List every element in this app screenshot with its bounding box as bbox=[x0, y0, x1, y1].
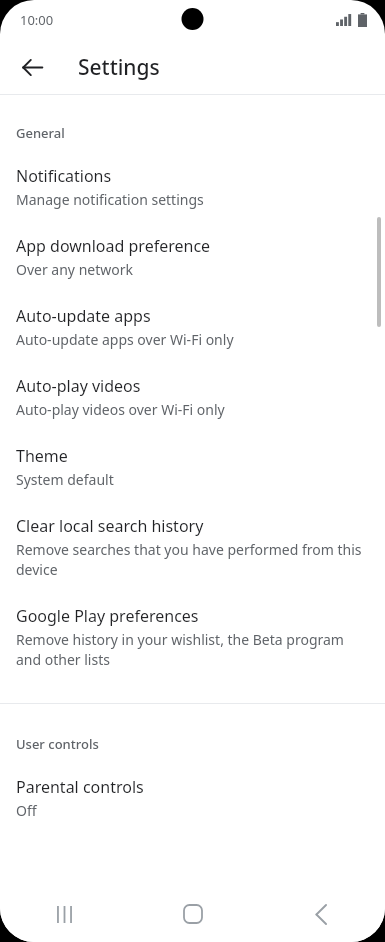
button[interactable]: Clear local search history bbox=[0, 503, 385, 593]
button[interactable]: Parental controls bbox=[0, 764, 385, 834]
staticText: Notifications bbox=[16, 165, 112, 187]
staticText: Auto-update apps over Wi-Fi only bbox=[16, 330, 234, 349]
staticText: Clear local search history bbox=[16, 515, 204, 537]
staticText: Parental controls bbox=[16, 776, 144, 798]
button[interactable]: App download preference bbox=[0, 223, 385, 293]
button[interactable]: Home bbox=[129, 886, 257, 942]
button[interactable]: Theme bbox=[0, 433, 385, 503]
staticText: Auto-play videos bbox=[16, 375, 141, 397]
button[interactable]: Recent apps bbox=[0, 886, 129, 942]
staticText: App download preference bbox=[16, 235, 211, 257]
staticText: System default bbox=[16, 470, 114, 489]
staticText: Remove searches that you have performed … bbox=[16, 540, 365, 579]
staticText: Theme bbox=[16, 445, 68, 467]
staticText: General bbox=[16, 124, 65, 142]
staticText: Settings bbox=[78, 53, 160, 82]
button[interactable]: Auto-play videos bbox=[0, 363, 385, 433]
button[interactable]: Auto-update apps bbox=[0, 293, 385, 363]
staticText: Remove history in your wishlist, the Bet… bbox=[16, 630, 365, 669]
staticText: Over any network bbox=[16, 260, 133, 279]
button[interactable]: Google Play preferences bbox=[0, 593, 385, 683]
staticText: Auto-play videos over Wi-Fi only bbox=[16, 400, 225, 419]
staticText: User controls bbox=[16, 735, 99, 753]
staticText: Auto-update apps bbox=[16, 305, 151, 327]
button[interactable]: Back bbox=[257, 886, 385, 942]
button[interactable]: Back bbox=[10, 45, 54, 89]
staticText: Manage notification settings bbox=[16, 190, 204, 209]
staticText: 10:00 bbox=[20, 11, 54, 29]
staticText: Google Play preferences bbox=[16, 605, 199, 627]
button[interactable]: Notifications bbox=[0, 153, 385, 223]
staticText: Off bbox=[16, 801, 37, 820]
